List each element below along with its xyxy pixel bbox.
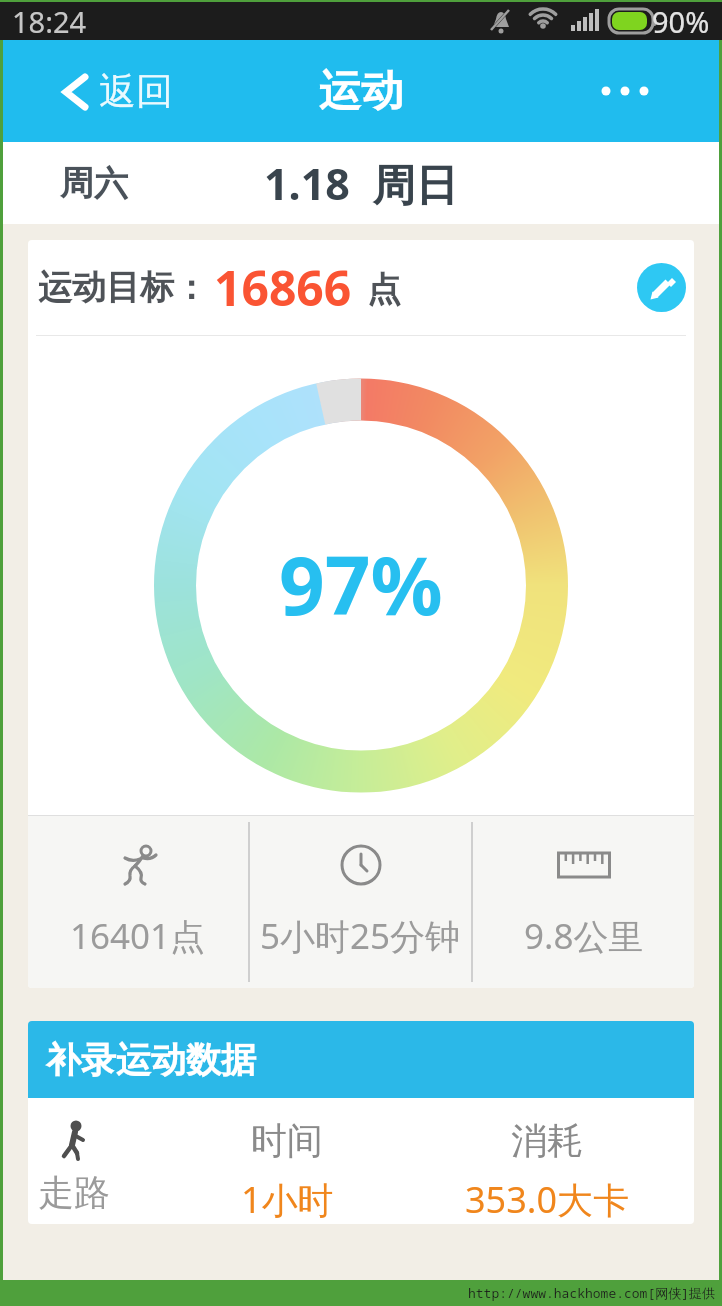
button[interactable]: 返回 <box>61 68 173 115</box>
staticText: 97% <box>279 529 443 638</box>
button[interactable] <box>637 263 686 312</box>
staticText: 1.18 周日 <box>264 154 459 213</box>
staticText: 90% <box>652 2 710 40</box>
button[interactable]: 5小时25分钟 <box>250 816 471 988</box>
staticText: 时间 <box>251 1118 323 1163</box>
staticText: 353.0大卡 <box>465 1175 630 1224</box>
button[interactable] <box>601 85 649 97</box>
staticText: 9.8公里 <box>524 912 644 960</box>
staticText: http://www.hackhome.com[网侠]提供 <box>468 1284 716 1302</box>
staticText: 补录运动数据 <box>46 1038 256 1082</box>
staticText: 运动目标： <box>38 266 208 309</box>
staticText: 点 <box>358 265 401 311</box>
staticText: 5小时25分钟 <box>260 912 461 960</box>
button[interactable]: 9.8公里 <box>473 816 694 988</box>
staticText: 18:24 <box>12 2 87 40</box>
staticText: 16401点 <box>70 912 206 960</box>
staticText: 运动 <box>319 65 403 118</box>
staticText: 16866 <box>214 255 352 320</box>
staticText: 消耗 <box>511 1118 583 1163</box>
staticText: 走路 <box>38 1170 110 1215</box>
button[interactable]: 消耗 <box>447 1098 647 1224</box>
staticText: 返回 <box>99 68 173 115</box>
staticText: 1小时 <box>241 1175 334 1224</box>
staticText: 周六 <box>60 162 128 205</box>
button[interactable]: 时间 <box>207 1098 367 1224</box>
button[interactable]: 走路 <box>28 1098 120 1224</box>
button[interactable]: 16401点 <box>28 816 248 988</box>
